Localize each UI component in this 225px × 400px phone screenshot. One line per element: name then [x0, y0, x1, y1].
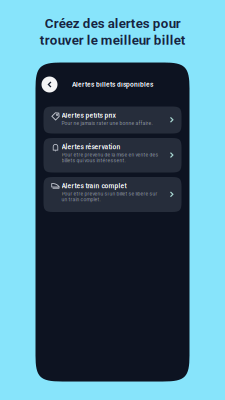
staticText: Pour ne jamais rater une bonne affaire. — [61, 120, 152, 126]
staticText: Alertes réservation — [61, 143, 120, 151]
button[interactable]: Alertes petits prix — [43, 106, 181, 133]
staticText: Créez des alertes pour trouver le meille… — [39, 16, 185, 48]
button[interactable]: Alertes réservation — [43, 138, 181, 172]
button[interactable]: Alertes train complet — [43, 177, 181, 212]
staticText: Alertes billets disponibles — [72, 81, 153, 88]
staticText: Alertes train complet — [61, 182, 126, 190]
staticText: Pour être prévenu de la mise en vente de… — [61, 152, 158, 164]
staticText: Alertes petits prix — [61, 111, 115, 119]
staticText: Pour être prévenu si un billet se libère… — [61, 191, 157, 203]
button[interactable]: Back — [39, 74, 59, 94]
